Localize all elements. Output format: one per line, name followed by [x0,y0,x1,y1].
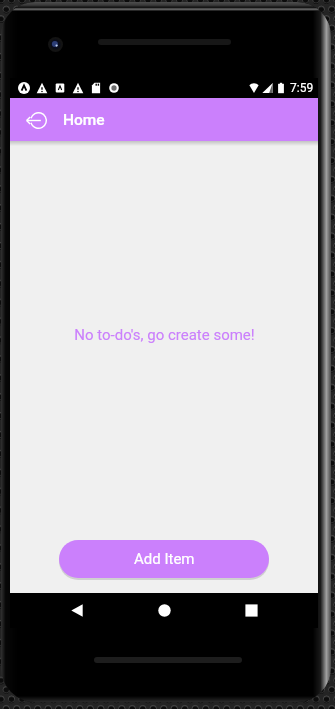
button[interactable]: Back [55,593,99,628]
staticText: Add Item [134,550,195,568]
button[interactable]: Back [20,104,52,136]
staticText: 7:59 [290,81,314,95]
button[interactable]: Recent apps [229,593,273,628]
button[interactable]: Home [142,593,186,628]
button[interactable]: Add Item [59,540,269,578]
staticText: No to-do's, go create some! [74,326,255,344]
staticText: Home [63,111,105,129]
